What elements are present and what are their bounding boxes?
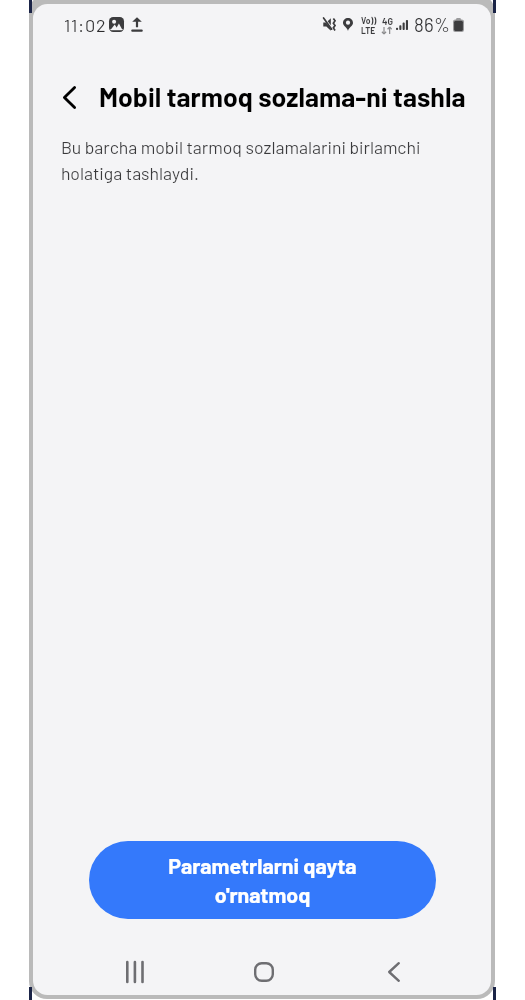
staticText: Vo)) <box>361 15 377 25</box>
staticText: Bu barcha mobil tarmoq sozlamalarini bir… <box>61 136 421 184</box>
staticText: LTE <box>361 25 376 35</box>
button[interactable]: Recent apps <box>105 946 164 995</box>
staticText: Parametrlarni qayta o'rnatmoq <box>168 853 357 907</box>
staticText: 11:02 <box>64 14 107 36</box>
staticText: 4G <box>382 16 393 27</box>
staticText: 86% <box>414 13 451 36</box>
button[interactable]: Navigate up <box>42 70 96 124</box>
button[interactable]: Back <box>364 946 423 995</box>
staticText: Mobil tarmoq sozlama-ni tashla <box>99 80 466 112</box>
button[interactable]: Parametrlarni qayta o'rnatmoq <box>89 841 436 919</box>
button[interactable]: Home <box>234 946 293 995</box>
